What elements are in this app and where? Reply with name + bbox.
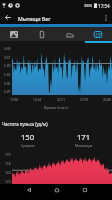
button[interactable]: Back: [23, 184, 35, 196]
staticText: Среднее: [21, 143, 35, 148]
button[interactable]: Back: [0, 11, 16, 24]
staticText: 150: [21, 132, 35, 142]
staticText: 140: [5, 171, 11, 175]
staticText: 5:43: [4, 73, 11, 77]
button[interactable]: More options: [99, 11, 112, 24]
button[interactable]: Map: [0, 27, 28, 41]
staticText: 36%: [84, 3, 93, 9]
staticText: Мытищи Бег: [18, 15, 51, 22]
button[interactable]: Shoes: [56, 27, 84, 41]
staticText: 175: [5, 153, 11, 157]
staticText: 5:20: [4, 64, 11, 68]
staticText: Время (ч:м:с): [44, 105, 69, 110]
staticText: 16:24: [33, 98, 42, 102]
staticText: 4:34: [4, 47, 11, 51]
staticText: Максимум: [75, 143, 93, 148]
staticText: 6:29: [4, 90, 11, 94]
staticText: 10:36: [10, 98, 19, 102]
button[interactable]: Splits: [28, 27, 56, 41]
staticText: 4:57: [4, 56, 11, 60]
staticText: Частота пульса (уд/м): [2, 121, 48, 127]
button[interactable]: Home: [51, 184, 63, 196]
staticText: 158: [5, 162, 11, 166]
staticText: 27:59: [80, 98, 89, 102]
staticText: 17:54: [98, 3, 110, 9]
staticText: 22:11: [57, 98, 66, 102]
staticText: 33:46: [103, 98, 112, 102]
staticText: 171: [77, 132, 91, 142]
button[interactable]: Recents: [79, 184, 91, 196]
button[interactable]: Summary: [84, 27, 112, 41]
staticText: 6:06: [4, 82, 11, 86]
staticText: 123: [5, 180, 11, 184]
